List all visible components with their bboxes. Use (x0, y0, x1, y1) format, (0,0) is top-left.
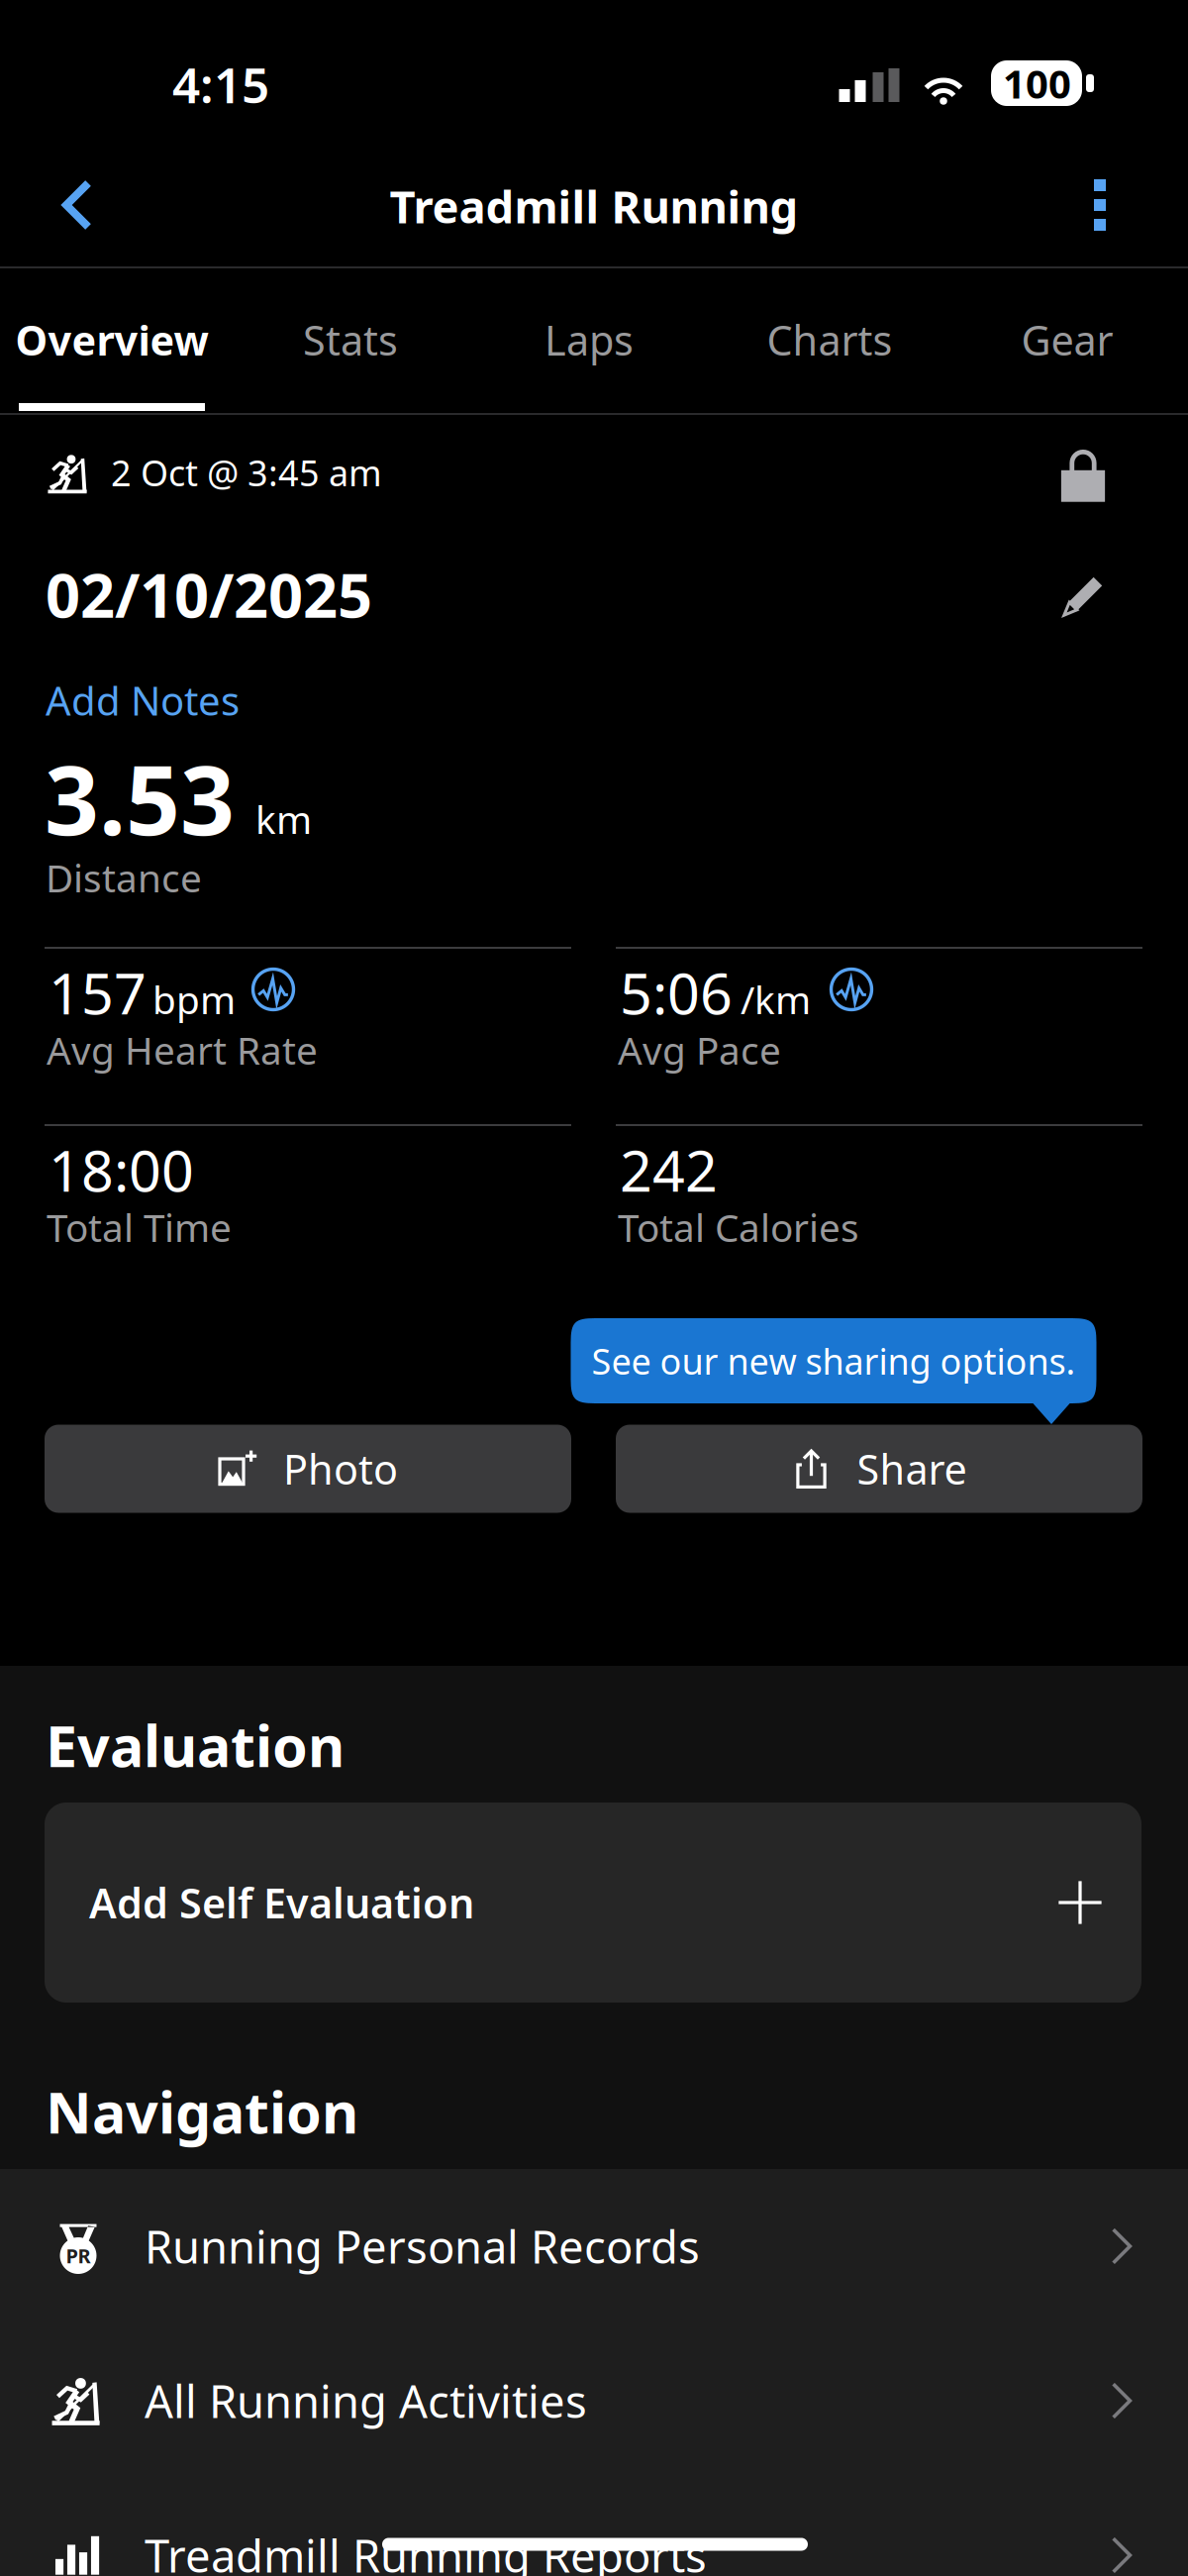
staticText: Share (857, 1442, 967, 1496)
button[interactable]: Add Self Evaluation (45, 1803, 1141, 2003)
staticText: PR (66, 2242, 91, 2269)
button[interactable]: Laps (471, 267, 707, 412)
staticText: bpm (152, 974, 236, 1025)
staticText: Avg Pace (618, 1024, 781, 1075)
staticText: Total Time (47, 1202, 232, 1252)
staticText: Running Personal Records (145, 2216, 700, 2276)
staticText: 157 (49, 955, 147, 1030)
button[interactable]: Back (22, 151, 133, 259)
staticText: km (255, 794, 312, 844)
staticText: Total Calories (618, 1202, 859, 1252)
staticText: Overview (15, 313, 208, 367)
staticText: /km (741, 974, 811, 1025)
button[interactable]: More options (1050, 151, 1149, 259)
staticText: Evaluation (46, 1707, 345, 1783)
staticText: 5:06 (620, 955, 733, 1030)
button[interactable]: PR (0, 2169, 1188, 2323)
button[interactable]: Gear (949, 267, 1185, 412)
button[interactable]: Edit (1036, 549, 1131, 644)
staticText: Add Self Evaluation (89, 1875, 474, 1930)
staticText: 4:15 (172, 52, 269, 117)
button[interactable]: Add Notes (46, 668, 382, 733)
staticText: Treadmill Running Reports (145, 2525, 707, 2576)
staticText: Photo (283, 1442, 398, 1496)
button[interactable]: Stats (233, 267, 468, 412)
button[interactable]: Overview (0, 267, 230, 412)
staticText: Gear (1021, 313, 1113, 367)
button[interactable]: Charts (712, 267, 947, 412)
staticText: Distance (46, 852, 202, 903)
staticText: Laps (544, 313, 634, 367)
staticText: Charts (767, 313, 892, 367)
button[interactable]: Photo (45, 1425, 571, 1513)
staticText: Add Notes (46, 674, 240, 726)
staticText: See our new sharing options. (592, 1337, 1076, 1384)
staticText: 100 (1003, 57, 1071, 109)
staticText: 3.53 (45, 735, 235, 861)
staticText: Treadmill Running (390, 176, 798, 236)
button[interactable]: Share (616, 1425, 1142, 1513)
staticText: 242 (620, 1132, 718, 1207)
staticText: Stats (303, 313, 398, 367)
staticText: Avg Heart Rate (47, 1024, 318, 1075)
button[interactable]: All Running Activities (0, 2323, 1188, 2478)
staticText: 18:00 (49, 1132, 194, 1207)
staticText: Navigation (46, 2074, 358, 2149)
button[interactable]: Treadmill Running Reports (0, 2478, 1188, 2576)
button[interactable]: Privacy (1036, 427, 1131, 522)
staticText: 2 Oct @ 3:45 am (111, 449, 382, 496)
staticText: 02/10/2025 (46, 554, 372, 635)
staticText: All Running Activities (145, 2371, 587, 2431)
